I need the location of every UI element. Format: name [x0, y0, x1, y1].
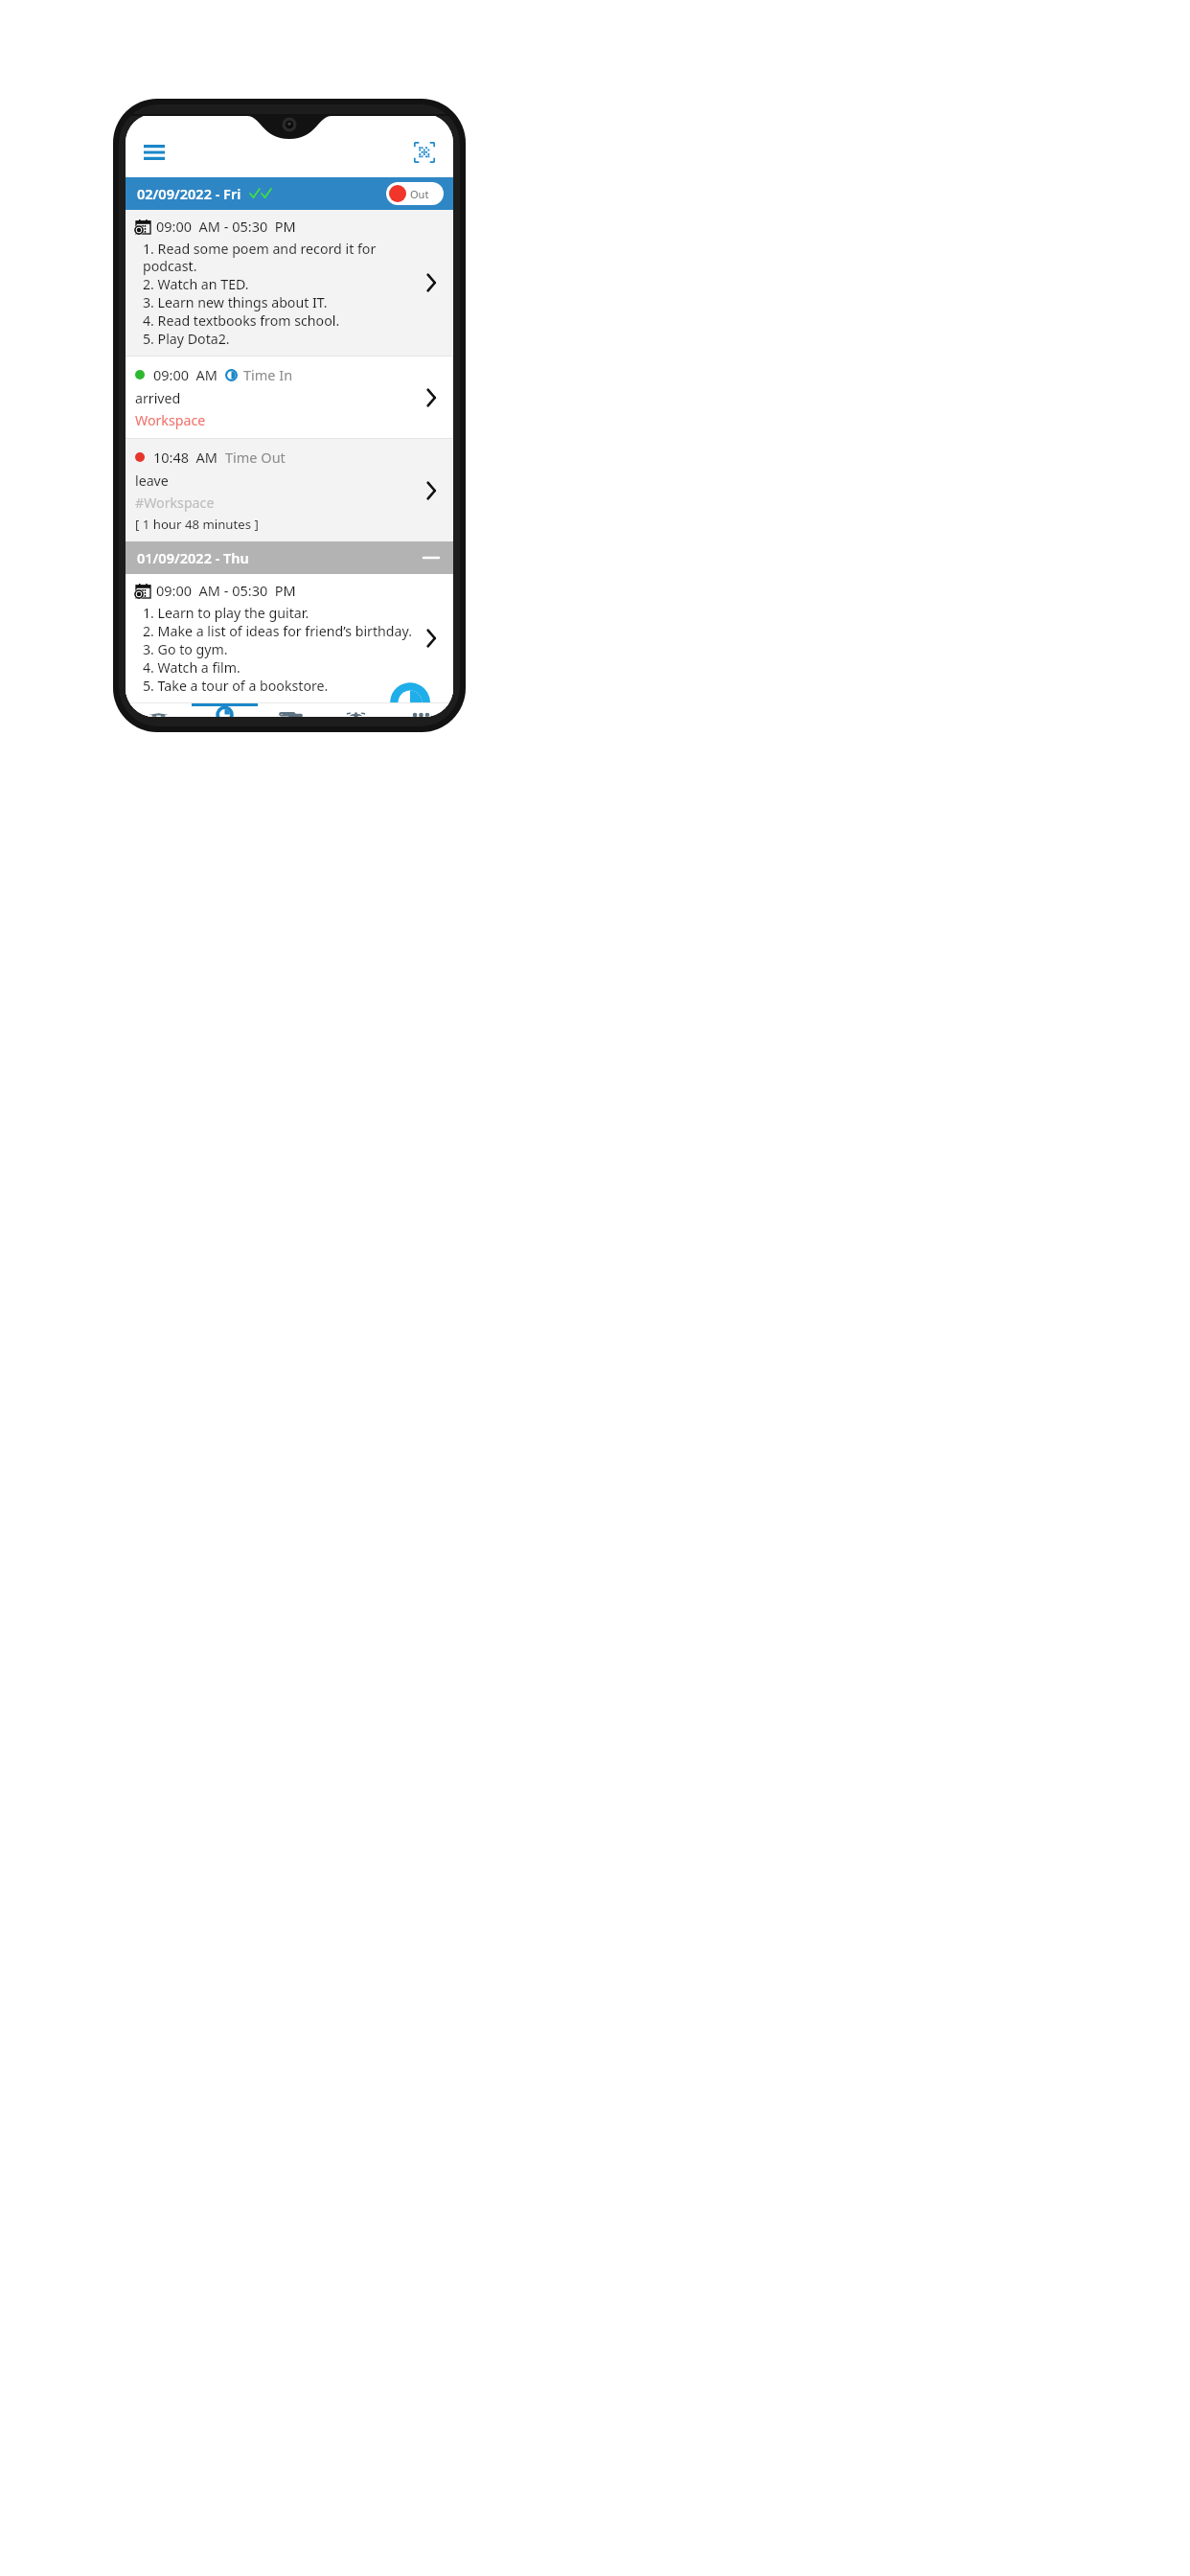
button[interactable]: 10:48 AM	[126, 439, 453, 541]
staticText: 01/09/2022 - Thu	[137, 548, 249, 567]
staticText: leave	[135, 471, 169, 490]
button[interactable]: More	[388, 703, 453, 717]
button[interactable]: 09:00 AM - 05:30 PM	[126, 210, 453, 356]
button[interactable]: 02/09/2022 - Fri	[126, 177, 453, 210]
staticText: 09:00 AM	[153, 365, 218, 384]
staticText: #Workspace	[135, 494, 215, 512]
staticText: 2. Make a list of ideas for friend’s bir…	[143, 622, 412, 640]
staticText: 09:00 AM - 05:30 PM	[156, 217, 296, 236]
button[interactable]: Check In	[192, 703, 258, 717]
button[interactable]: 09:00 AM	[126, 356, 453, 438]
staticText: Workspace	[135, 411, 206, 429]
staticText: Time Out	[225, 448, 286, 467]
button[interactable]: Message	[258, 703, 323, 717]
button[interactable]: Out	[386, 182, 444, 205]
staticText: 3. Go to gym.	[143, 640, 228, 658]
button[interactable]: Home	[126, 703, 192, 717]
staticText: 5. Play Dota2.	[143, 330, 230, 348]
staticText: 10:48 AM	[153, 448, 218, 467]
staticText: Out	[410, 187, 429, 201]
button[interactable]: Open navigation menu	[137, 135, 172, 170]
staticText: 1. Read some poem and record it for podc…	[143, 240, 417, 275]
staticText: Time In	[243, 365, 293, 384]
staticText: 3. Learn new things about IT.	[143, 293, 328, 311]
staticText: 2. Watch an TED.	[143, 275, 249, 293]
button[interactable]: Notification	[323, 703, 388, 717]
button[interactable]: 09:00 AM - 05:30 PM	[126, 574, 453, 702]
staticText: 02/09/2022 - Fri	[137, 184, 241, 203]
staticText: 4. Read textbooks from school.	[143, 311, 340, 330]
button[interactable]: Collapse day	[419, 545, 444, 570]
staticText: 5. Take a tour of a bookstore.	[143, 677, 329, 695]
button[interactable]: 01/09/2022 - Thu	[126, 541, 453, 574]
staticText: [ 1 hour 48 minutes ]	[135, 516, 259, 533]
staticText: arrived	[135, 389, 181, 407]
staticText: 4. Watch a film.	[143, 658, 240, 677]
staticText: 09:00 AM - 05:30 PM	[156, 581, 296, 600]
staticText: 1. Learn to play the guitar.	[143, 604, 309, 622]
button[interactable]: Scan QR code	[407, 135, 442, 170]
